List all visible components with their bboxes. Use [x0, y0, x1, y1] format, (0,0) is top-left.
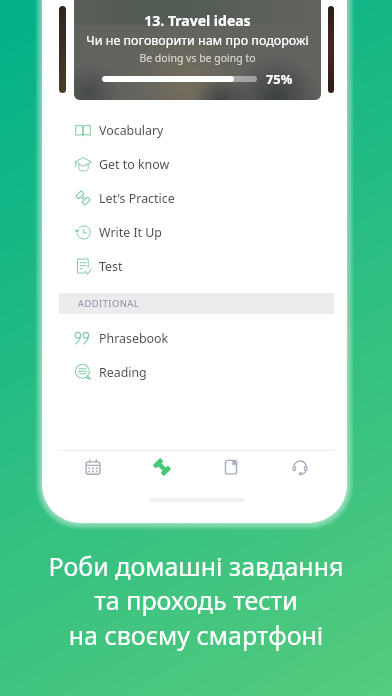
staticText: Reading — [99, 364, 147, 381]
button[interactable]: Write It Up — [59, 215, 334, 249]
button[interactable]: Practice — [127, 445, 196, 489]
staticText: Write It Up — [99, 224, 162, 241]
staticText: Be doing vs be going to — [74, 51, 321, 65]
button[interactable]: Calendar — [59, 445, 127, 489]
staticText: Роби домашні завдання та проходь тести н… — [0, 549, 392, 653]
button[interactable]: Test — [59, 249, 334, 283]
button[interactable]: Support — [265, 445, 334, 489]
staticText: Чи не поговорити нам про подорожі — [74, 32, 321, 49]
button[interactable]: Vocabulary — [59, 113, 334, 147]
staticText: Get to know — [99, 156, 170, 173]
staticText: 75% — [266, 70, 293, 87]
staticText: Vocabulary — [99, 122, 164, 139]
button[interactable]: Let's Practice — [59, 181, 334, 215]
button[interactable]: Reading — [59, 355, 334, 389]
staticText: Phrasebook — [99, 330, 169, 347]
staticText: Test — [99, 258, 123, 275]
staticText: Let's Practice — [99, 190, 175, 207]
button[interactable]: Bookmark — [196, 445, 265, 489]
button[interactable]: Phrasebook — [59, 321, 334, 355]
button[interactable]: Get to know — [59, 147, 334, 181]
staticText: ADDITIONAL — [78, 297, 140, 310]
staticText: 13. Travel ideas — [74, 11, 321, 30]
